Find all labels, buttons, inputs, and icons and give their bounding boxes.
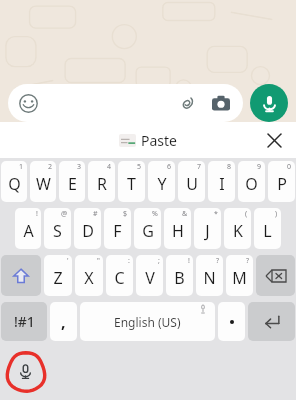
button[interactable]: ; xyxy=(136,255,163,296)
staticText: 9 xyxy=(257,162,262,172)
staticText: A xyxy=(23,220,34,242)
staticText: S xyxy=(53,220,62,242)
staticText: ' xyxy=(67,256,69,266)
button[interactable]: @ xyxy=(44,208,71,249)
staticText: 1 xyxy=(19,162,24,172)
staticText: 3 xyxy=(77,162,82,172)
button[interactable]: 8 xyxy=(208,161,235,202)
button[interactable]: 0 xyxy=(268,161,295,202)
button[interactable]: Emoji xyxy=(17,92,39,114)
staticText: Paste xyxy=(141,131,177,150)
staticText: * xyxy=(214,209,218,219)
staticText: W xyxy=(36,173,51,195)
button[interactable]: Symbols xyxy=(1,302,47,341)
button[interactable]: Voice input xyxy=(10,356,40,386)
staticText: # xyxy=(93,209,98,219)
staticText: 4 xyxy=(107,162,112,172)
button[interactable]: ? xyxy=(226,255,253,296)
staticText: , xyxy=(61,311,66,333)
button[interactable]: : xyxy=(106,255,133,296)
staticText: ; xyxy=(158,256,160,266)
button[interactable]: $ xyxy=(104,208,131,249)
staticText: V xyxy=(145,267,155,289)
button[interactable]: Camera xyxy=(208,90,234,116)
staticText: C xyxy=(114,267,125,289)
staticText: O xyxy=(245,173,258,195)
staticText: ) xyxy=(275,209,278,219)
button[interactable]: 9 xyxy=(238,161,265,202)
button[interactable]: Emoji xyxy=(8,84,243,122)
button[interactable]: Attach xyxy=(174,90,200,116)
staticText: L xyxy=(263,220,272,242)
staticText: F xyxy=(113,220,122,242)
staticText: 7 xyxy=(197,162,202,172)
staticText: Z xyxy=(53,267,63,289)
staticText: ! xyxy=(188,256,190,266)
button[interactable]: # xyxy=(74,208,101,249)
button[interactable]: ' xyxy=(44,255,72,296)
button[interactable]: 2 xyxy=(30,161,56,202)
button[interactable]: ( xyxy=(224,208,251,249)
button[interactable]: ! xyxy=(166,255,193,296)
button[interactable]: Backspace xyxy=(256,255,295,296)
staticText: ! xyxy=(36,209,38,219)
button[interactable]: ! xyxy=(15,208,41,249)
button[interactable]: Voice message xyxy=(250,84,288,122)
staticText: $ xyxy=(123,209,128,219)
staticText: 0 xyxy=(287,162,292,172)
button[interactable]: 3 xyxy=(59,161,85,202)
button[interactable]: & xyxy=(164,208,191,249)
button[interactable]: Enter xyxy=(248,302,295,341)
staticText: 5 xyxy=(137,162,142,172)
staticText: I xyxy=(219,173,225,195)
button[interactable]: ? xyxy=(196,255,223,296)
staticText: U xyxy=(186,173,198,195)
staticText: X xyxy=(84,267,94,289)
staticText: " xyxy=(97,256,100,266)
staticText: E xyxy=(68,173,77,195)
staticText: !#1 xyxy=(14,312,35,331)
staticText: English (US) xyxy=(114,314,181,330)
staticText: D xyxy=(82,220,94,242)
button[interactable]: 7 xyxy=(178,161,205,202)
button[interactable]: , xyxy=(50,302,77,341)
staticText: H xyxy=(172,220,184,242)
staticText: Y xyxy=(157,173,167,195)
staticText: P xyxy=(277,173,287,195)
button[interactable]: 5 xyxy=(118,161,145,202)
staticText: N xyxy=(203,267,216,289)
staticText: Q xyxy=(8,173,21,195)
staticText: ? xyxy=(216,256,220,266)
button[interactable]: English (US) xyxy=(80,302,215,341)
button[interactable]: ) xyxy=(254,208,281,249)
staticText: M xyxy=(232,267,247,289)
button[interactable]: * xyxy=(194,208,221,249)
staticText: 8 xyxy=(227,162,232,172)
staticText: T xyxy=(127,173,136,195)
staticText: G xyxy=(142,220,154,242)
staticText: @ xyxy=(61,209,68,219)
button[interactable]: Shift xyxy=(1,255,41,296)
staticText: R xyxy=(97,173,107,195)
button[interactable]: % xyxy=(134,208,161,249)
staticText: 2 xyxy=(48,162,53,172)
button[interactable]: 4 xyxy=(88,161,115,202)
staticText: K xyxy=(233,220,243,242)
staticText: & xyxy=(182,209,188,219)
button[interactable] xyxy=(218,302,245,341)
button[interactable]: Close xyxy=(262,128,286,152)
staticText: J xyxy=(205,220,210,242)
button[interactable]: Paste xyxy=(110,127,186,154)
staticText: ( xyxy=(245,209,248,219)
button[interactable]: 1 xyxy=(1,161,27,202)
staticText: : xyxy=(128,256,130,266)
staticText: 6 xyxy=(167,162,172,172)
staticText: % xyxy=(152,209,158,219)
staticText: ? xyxy=(246,256,250,266)
button[interactable]: 6 xyxy=(148,161,175,202)
staticText: B xyxy=(174,267,185,289)
button[interactable]: " xyxy=(75,255,103,296)
